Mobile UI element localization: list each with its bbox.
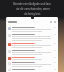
staticText: sie dir verschwinden, wenn bbox=[16, 7, 50, 11]
button[interactable] bbox=[8, 27, 56, 32]
button[interactable] bbox=[8, 43, 56, 48]
button[interactable] bbox=[8, 57, 56, 60]
button[interactable] bbox=[8, 34, 56, 41]
button[interactable]: Title bbox=[6, 17, 58, 72]
staticText: Beende eine Aufgabe und lass bbox=[13, 2, 51, 6]
button[interactable] bbox=[8, 50, 56, 55]
button[interactable] bbox=[8, 69, 56, 71]
button[interactable]: Beende eine Aufgabe und lass bbox=[0, 0, 64, 17]
button[interactable] bbox=[8, 62, 56, 67]
staticText: du fertig bist. bbox=[24, 12, 41, 16]
button[interactable]: Title bbox=[8, 21, 17, 23]
